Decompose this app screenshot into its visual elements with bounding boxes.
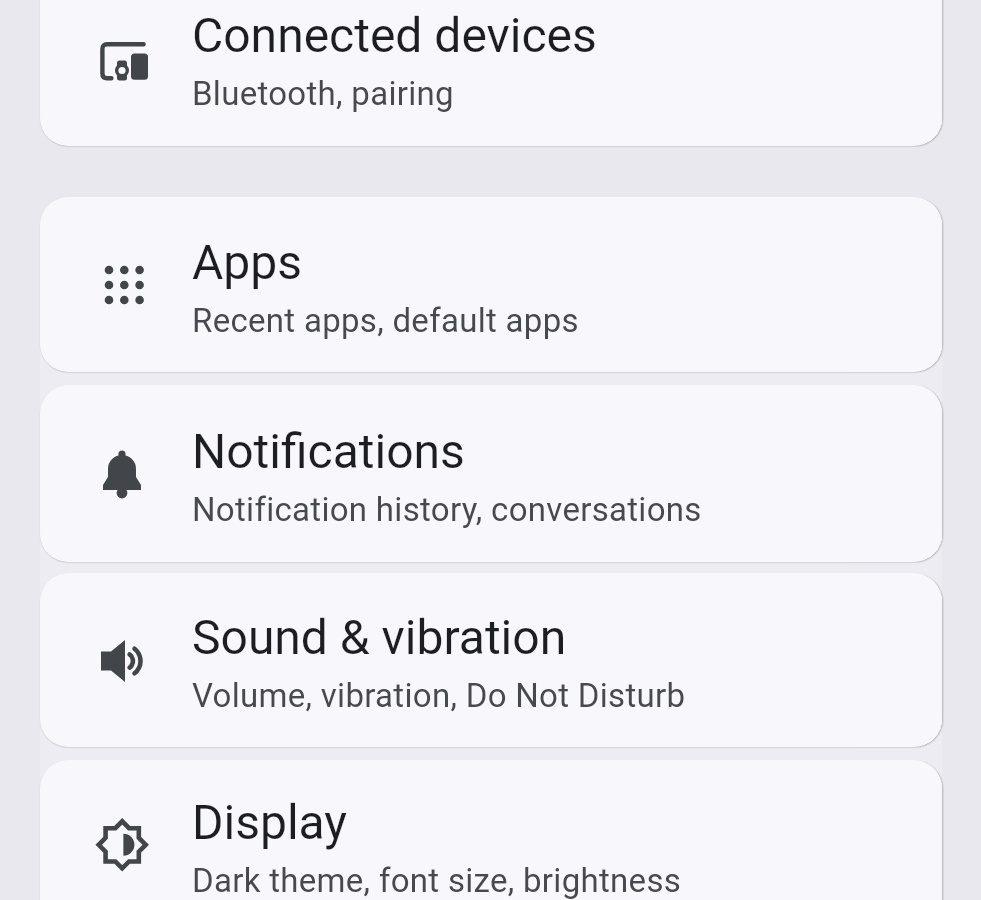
button[interactable]: Display [40, 760, 942, 900]
staticText: Dark theme, font size, brightness [192, 861, 682, 900]
staticText: Volume, vibration, Do Not Disturb [192, 676, 686, 715]
staticText: Notifications [192, 423, 465, 479]
staticText: Notification history, conversations [192, 490, 702, 529]
staticText: Display [192, 794, 348, 850]
staticText: Sound & vibration [192, 609, 567, 665]
staticText: Bluetooth, pairing [192, 74, 454, 113]
staticText: Recent apps, default apps [192, 301, 579, 340]
button[interactable]: Notifications [40, 385, 942, 562]
staticText: Apps [192, 234, 302, 290]
button[interactable]: Connected devices [40, 0, 942, 146]
staticText: Connected devices [192, 7, 597, 63]
button[interactable]: Apps [40, 197, 942, 372]
button[interactable]: Sound & vibration [40, 573, 942, 747]
